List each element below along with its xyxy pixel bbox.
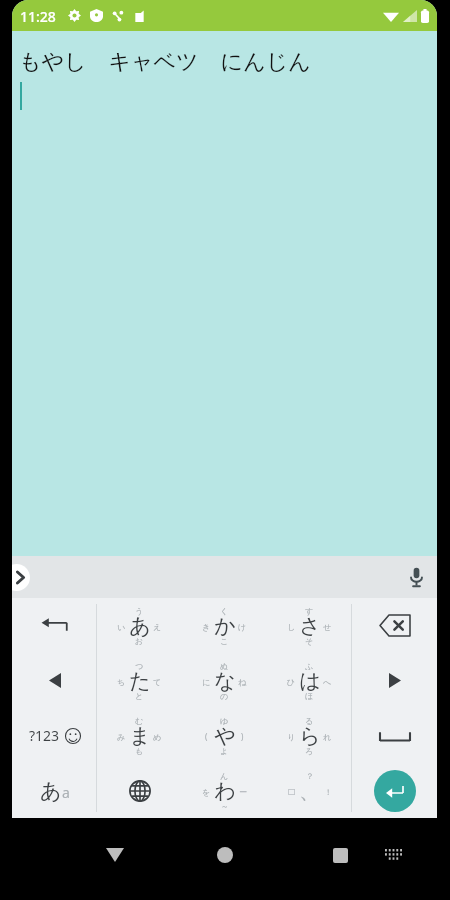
staticText: お	[135, 636, 144, 646]
button[interactable]: Recents	[320, 835, 360, 875]
staticText: の	[220, 691, 229, 701]
button[interactable]: ？	[267, 763, 352, 818]
staticText: は	[299, 668, 321, 694]
staticText: れ	[323, 732, 332, 742]
staticText: ろ	[305, 746, 314, 756]
staticText: さ	[299, 613, 321, 639]
button[interactable]: Change keyboard	[376, 837, 410, 871]
staticText: う	[135, 606, 144, 616]
other: Undo	[12, 598, 97, 653]
staticText: す	[305, 606, 314, 616]
button[interactable]: あ	[12, 763, 97, 818]
button[interactable]: ふ	[267, 653, 352, 708]
staticText: a	[62, 783, 70, 802]
staticText: ゆ	[220, 716, 229, 726]
staticText: ほ	[305, 691, 314, 701]
staticText: や	[214, 723, 236, 749]
button[interactable]: Voice input	[395, 556, 437, 598]
staticText: る	[305, 716, 314, 726]
staticText: く	[220, 606, 229, 616]
button[interactable]: す	[267, 598, 352, 653]
other: Space	[352, 708, 437, 763]
staticText: わ	[214, 778, 236, 804]
staticText: け	[238, 622, 247, 632]
staticText: もやし キャベツ にんじん	[19, 45, 311, 75]
staticText: ぬ	[220, 661, 229, 671]
button[interactable]: む	[97, 708, 182, 763]
button[interactable]: う	[97, 598, 182, 653]
staticText: に	[202, 677, 211, 687]
other: Delete	[352, 598, 437, 653]
button[interactable]: ?123	[12, 708, 97, 763]
staticText: ふ	[305, 661, 314, 671]
button[interactable]: Move cursor left	[12, 653, 97, 708]
other: Switch language	[97, 763, 182, 818]
other: Move cursor right	[352, 653, 437, 708]
other: Enter	[352, 763, 437, 818]
staticText: あ	[40, 778, 62, 804]
button[interactable]: つ	[97, 653, 182, 708]
button[interactable]: く	[182, 598, 267, 653]
staticText: ？	[306, 771, 314, 781]
staticText: も	[135, 746, 144, 756]
staticText: (	[205, 731, 208, 742]
staticText: か	[214, 613, 236, 639]
staticText: ら	[299, 723, 321, 749]
button[interactable]: Enter	[352, 763, 437, 818]
staticText: せ	[323, 622, 332, 632]
button[interactable]: Delete	[352, 598, 437, 653]
staticText: 11:28	[20, 7, 56, 26]
staticText: ま	[129, 723, 151, 749]
staticText: め	[153, 732, 162, 742]
staticText: ち	[117, 677, 126, 687]
button[interactable]: ん	[182, 763, 267, 818]
button[interactable]: Undo	[12, 598, 97, 653]
staticText: え	[153, 622, 162, 632]
staticText: な	[214, 668, 236, 694]
staticText: よ	[220, 746, 229, 756]
staticText: ね	[238, 677, 247, 687]
staticText: へ	[323, 677, 332, 687]
staticText: と	[135, 691, 144, 701]
button[interactable]: ゆ	[182, 708, 267, 763]
staticText: そ	[305, 636, 314, 646]
staticText: ん	[220, 771, 229, 781]
staticText: こ	[220, 636, 229, 646]
staticText: き	[202, 622, 211, 632]
button[interactable]: Hide keyboard	[95, 835, 135, 875]
button[interactable]: る	[267, 708, 352, 763]
staticText: て	[153, 677, 162, 687]
staticText: し	[287, 622, 296, 632]
staticText: を	[202, 787, 211, 797]
staticText: ?123	[29, 726, 60, 745]
staticText: ！	[324, 787, 332, 797]
staticText: ～	[221, 801, 229, 811]
staticText: む	[135, 716, 144, 726]
staticText: た	[129, 668, 151, 694]
staticText: □	[288, 787, 296, 796]
staticText: あ	[129, 613, 151, 639]
staticText: )	[241, 731, 244, 742]
button[interactable]: Move cursor right	[352, 653, 437, 708]
button[interactable]: Space	[352, 708, 437, 763]
staticText: り	[287, 732, 296, 742]
button[interactable]: Expand suggestions	[12, 564, 30, 591]
staticText: 、	[299, 778, 320, 804]
other: Move cursor left	[12, 653, 97, 708]
button[interactable]: Switch language	[97, 763, 182, 818]
staticText: ひ	[287, 677, 296, 687]
button[interactable]: ぬ	[182, 653, 267, 708]
staticText: ー	[239, 787, 247, 797]
staticText: み	[117, 732, 126, 742]
staticText: い	[117, 622, 126, 632]
staticText: つ	[135, 661, 144, 671]
button[interactable]: Home	[205, 835, 245, 875]
